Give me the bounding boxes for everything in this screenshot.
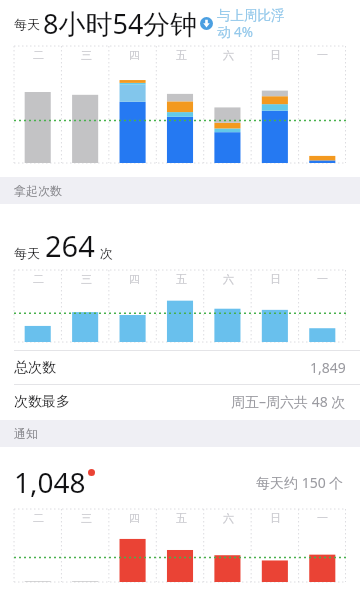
staticText: 五 bbox=[176, 48, 187, 62]
staticText: 六 bbox=[223, 272, 234, 286]
button[interactable]: 总次数 bbox=[0, 350, 360, 384]
staticText: 日 bbox=[270, 272, 281, 286]
staticText: 六 bbox=[223, 511, 234, 525]
staticText: 四 bbox=[129, 272, 140, 286]
staticText: 五 bbox=[176, 511, 187, 525]
staticText: 1,048 bbox=[14, 463, 86, 501]
staticText: 一 bbox=[317, 48, 328, 62]
staticText: 通知 bbox=[14, 426, 38, 441]
staticText: 三 bbox=[81, 48, 92, 62]
staticText: 二 bbox=[33, 48, 44, 62]
staticText: 每天 bbox=[14, 16, 40, 32]
staticText: 二 bbox=[33, 272, 44, 286]
staticText: 与上周比浮动 4% bbox=[217, 7, 293, 41]
staticText: 四 bbox=[129, 48, 140, 62]
staticText: 四 bbox=[129, 511, 140, 525]
staticText: 日 bbox=[270, 511, 281, 525]
staticText: 拿起次数 bbox=[14, 183, 62, 198]
staticText: 二 bbox=[33, 511, 44, 525]
staticText: 每天 bbox=[14, 245, 40, 261]
staticText: 日 bbox=[270, 48, 281, 62]
staticText: 次数最多 bbox=[14, 393, 70, 411]
staticText: 三 bbox=[81, 272, 92, 286]
staticText: 总次数 bbox=[14, 359, 56, 377]
staticText: 三 bbox=[81, 511, 92, 525]
staticText: 次 bbox=[100, 245, 113, 261]
staticText: 264 bbox=[45, 226, 95, 265]
staticText: 周五–周六共 48 次 bbox=[231, 392, 346, 411]
staticText: 1,849 bbox=[310, 358, 346, 377]
staticText: 每天约 150 个 bbox=[256, 473, 344, 492]
button[interactable]: 下降 bbox=[200, 17, 213, 30]
staticText: 一 bbox=[317, 272, 328, 286]
staticText: 8小时54分钟 bbox=[43, 5, 198, 42]
button[interactable]: 次数最多 bbox=[0, 384, 360, 418]
staticText: 一 bbox=[317, 511, 328, 525]
staticText: 五 bbox=[176, 272, 187, 286]
staticText: 六 bbox=[223, 48, 234, 62]
